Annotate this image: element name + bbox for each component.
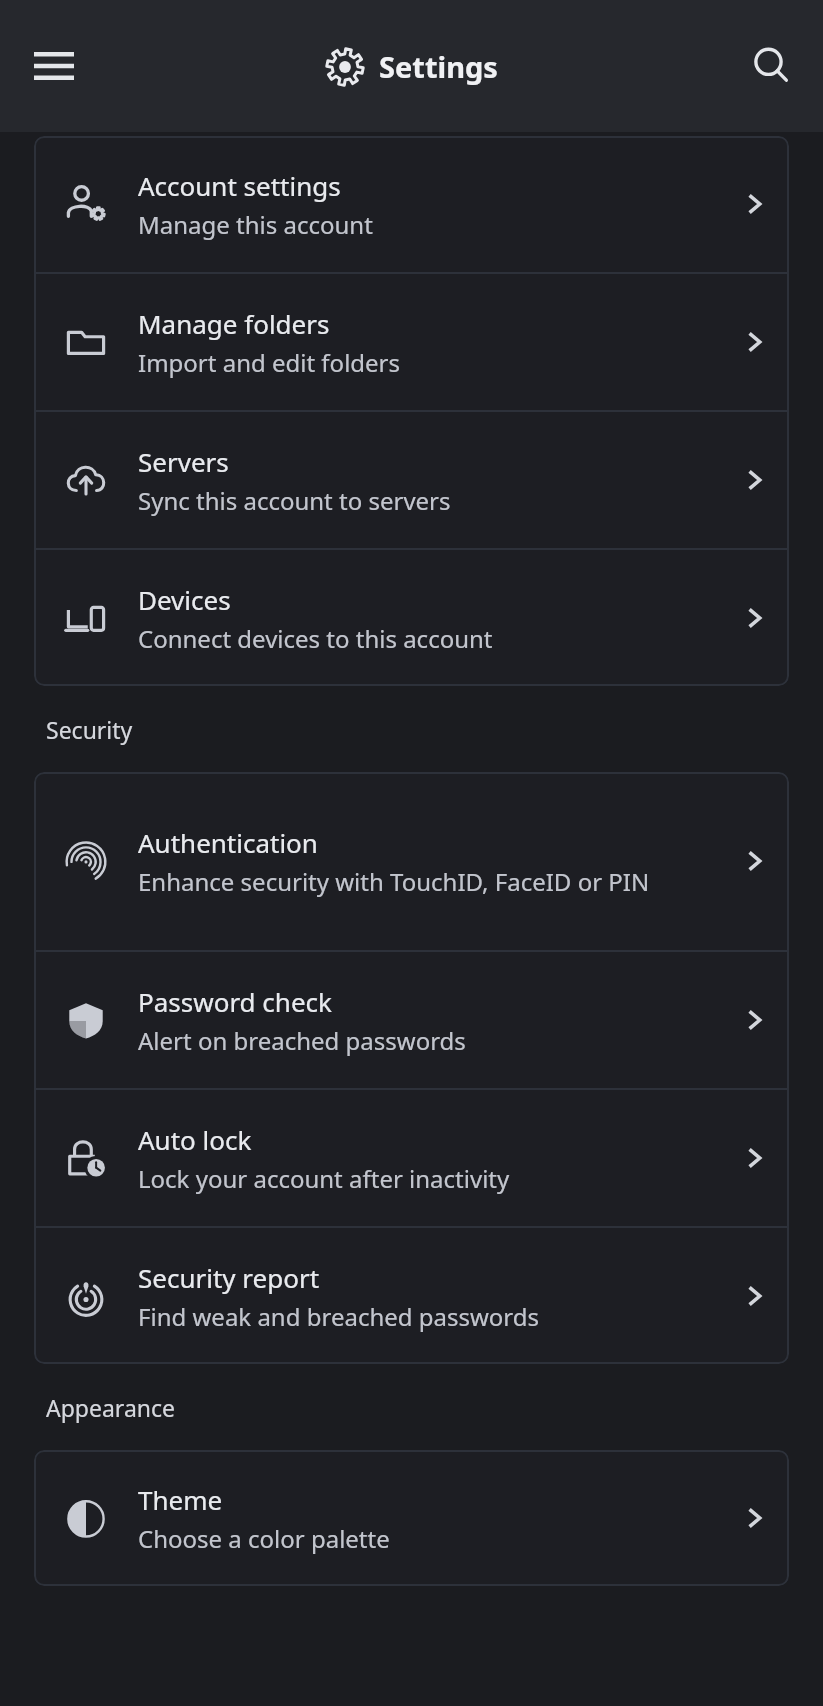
button[interactable]: Open navigation menu xyxy=(20,32,88,100)
staticText: Lock your account after inactivity xyxy=(138,1162,510,1195)
button[interactable]: Servers xyxy=(34,412,789,548)
staticText: Connect devices to this account xyxy=(138,622,493,655)
button[interactable]: Auto lock xyxy=(34,1090,789,1226)
staticText: Manage this account xyxy=(138,208,373,241)
staticText: Auto lock xyxy=(138,1122,252,1157)
staticText: Import and edit folders xyxy=(138,346,401,379)
staticText: Authentication xyxy=(138,825,318,860)
button[interactable]: Search xyxy=(737,32,805,100)
staticText: Security report xyxy=(138,1260,320,1295)
button[interactable]: Theme xyxy=(34,1450,789,1586)
staticText: Settings xyxy=(379,47,498,86)
staticText: Devices xyxy=(138,582,231,617)
staticText: Manage folders xyxy=(138,306,330,341)
staticText: Appearance xyxy=(46,1392,176,1423)
staticText: Choose a color palette xyxy=(138,1522,390,1555)
button[interactable]: Security report xyxy=(34,1228,789,1364)
staticText: Find weak and breached passwords xyxy=(138,1300,540,1333)
button[interactable]: Account settings xyxy=(34,136,789,272)
staticText: Password check xyxy=(138,984,332,1019)
staticText: Account settings xyxy=(138,168,341,203)
button[interactable]: Devices xyxy=(34,550,789,686)
staticText: Security xyxy=(46,714,133,745)
button[interactable]: Password check xyxy=(34,952,789,1088)
button[interactable]: Manage folders xyxy=(34,274,789,410)
staticText: Enhance security with TouchID, FaceID or… xyxy=(138,865,650,898)
staticText: Theme xyxy=(138,1482,223,1517)
button[interactable]: Authentication xyxy=(34,772,789,950)
staticText: Sync this account to servers xyxy=(138,484,451,517)
staticText: Servers xyxy=(138,444,229,479)
staticText: Alert on breached passwords xyxy=(138,1024,466,1057)
